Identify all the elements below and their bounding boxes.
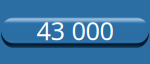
staticText: 43 000: [36, 14, 113, 47]
button[interactable]: 43 000: [1, 19, 149, 45]
